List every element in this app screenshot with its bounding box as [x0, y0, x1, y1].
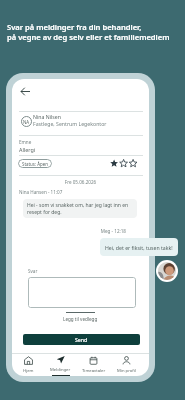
button[interactable]: Legg til vedlegg [12, 312, 149, 322]
staticText: Svar på meldinger fra din behandler, [7, 22, 142, 32]
staticText: NA [23, 119, 30, 125]
staticText: Meg - 12:18 [12, 228, 126, 234]
staticText: Min profil [117, 368, 136, 374]
staticText: Status: Åpen [22, 161, 48, 167]
staticText: Timeavtaler [82, 368, 106, 374]
button[interactable]: Back [18, 84, 32, 98]
staticText: Nina Hansen - 11:07 [19, 189, 63, 195]
button[interactable]: Send [23, 334, 140, 345]
staticText: Meldinger [50, 367, 71, 373]
button[interactable]: Hjem [12, 354, 44, 376]
staticText: Fre 05.06.2026 [12, 179, 149, 185]
staticText: Allergi [19, 146, 36, 153]
staticText: Hei, det er fiksit, tusen takk! [105, 244, 173, 251]
button[interactable]: Timeavtaler [77, 354, 110, 376]
staticText: Nina Nilsen [33, 113, 61, 120]
staticText: Hjem [23, 368, 34, 374]
staticText: Emne [19, 139, 32, 145]
staticText: Svar [28, 268, 38, 274]
button[interactable] [28, 277, 136, 308]
staticText: Fastlege, Sentrum Legekontor [33, 120, 107, 127]
button[interactable]: Meldinger [44, 354, 77, 376]
staticText: Send [75, 336, 88, 343]
staticText: Legg til vedlegg [63, 316, 98, 322]
staticText: på vegne av deg selv eller et familiemed… [7, 32, 170, 42]
button[interactable]: Min profil [110, 354, 143, 376]
button[interactable]: Status: Åpen [22, 159, 48, 168]
staticText: Hei - som vi snakket om, har jeg lagt in… [27, 202, 133, 215]
